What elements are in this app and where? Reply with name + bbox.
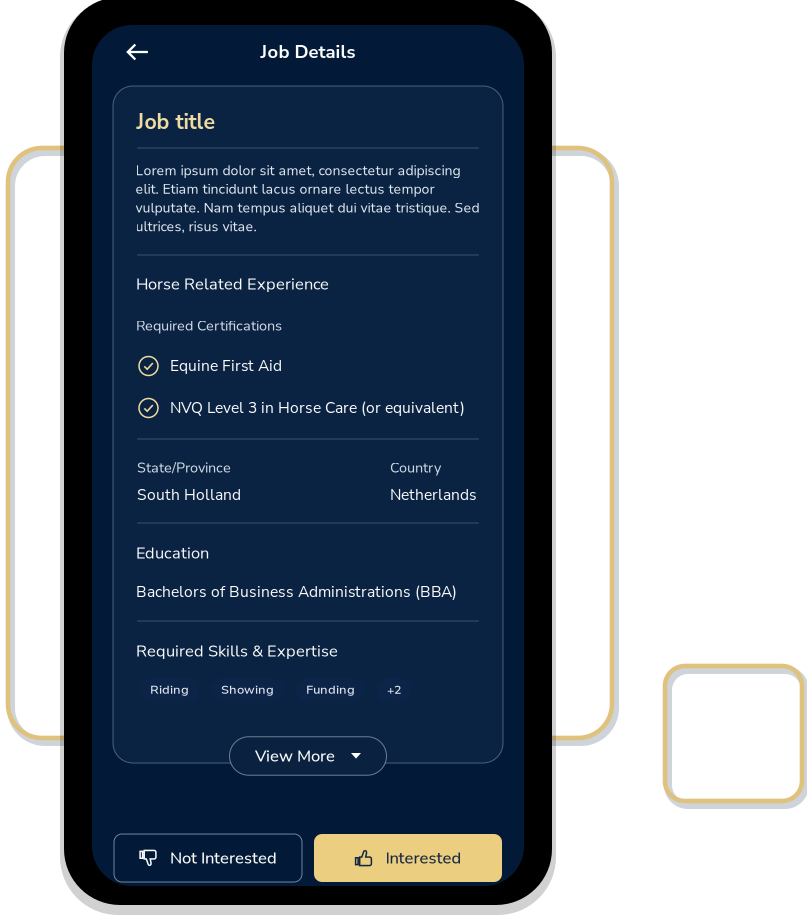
staticText: Horse Related Experience	[136, 273, 329, 295]
staticText: Job title	[136, 107, 215, 137]
button[interactable]: +2	[377, 679, 411, 701]
staticText: Netherlands	[390, 484, 477, 505]
staticText: Required Skills & Expertise	[136, 640, 338, 662]
staticText: Funding	[306, 681, 355, 698]
staticText: Showing	[221, 681, 274, 698]
button[interactable]: Showing	[211, 679, 284, 701]
staticText: NVQ Level 3 in Horse Care (or equivalent…	[170, 397, 465, 418]
staticText: +2	[387, 681, 401, 698]
staticText: Bachelors of Business Administrations (B…	[136, 581, 457, 602]
staticText: Equine First Aid	[170, 355, 282, 376]
staticText: Job Details	[260, 39, 355, 65]
staticText: Country	[390, 458, 441, 477]
button[interactable]: Riding	[140, 679, 199, 701]
staticText: Education	[136, 542, 209, 564]
button[interactable]: Funding	[296, 679, 365, 701]
button[interactable]: Not Interested	[114, 834, 302, 882]
staticText: Riding	[150, 681, 189, 698]
staticText: View More	[255, 745, 335, 767]
button[interactable]: View More	[229, 737, 386, 775]
staticText: State/Province	[137, 458, 231, 477]
button[interactable]: Interested	[314, 834, 502, 882]
staticText: South Holland	[137, 484, 241, 505]
button[interactable]: Back	[115, 31, 161, 73]
staticText: Lorem ipsum dolor sit amet, consectetur …	[135, 161, 479, 236]
staticText: Not Interested	[170, 847, 277, 869]
staticText: Interested	[385, 847, 461, 869]
staticText: Required Certifications	[136, 316, 282, 336]
